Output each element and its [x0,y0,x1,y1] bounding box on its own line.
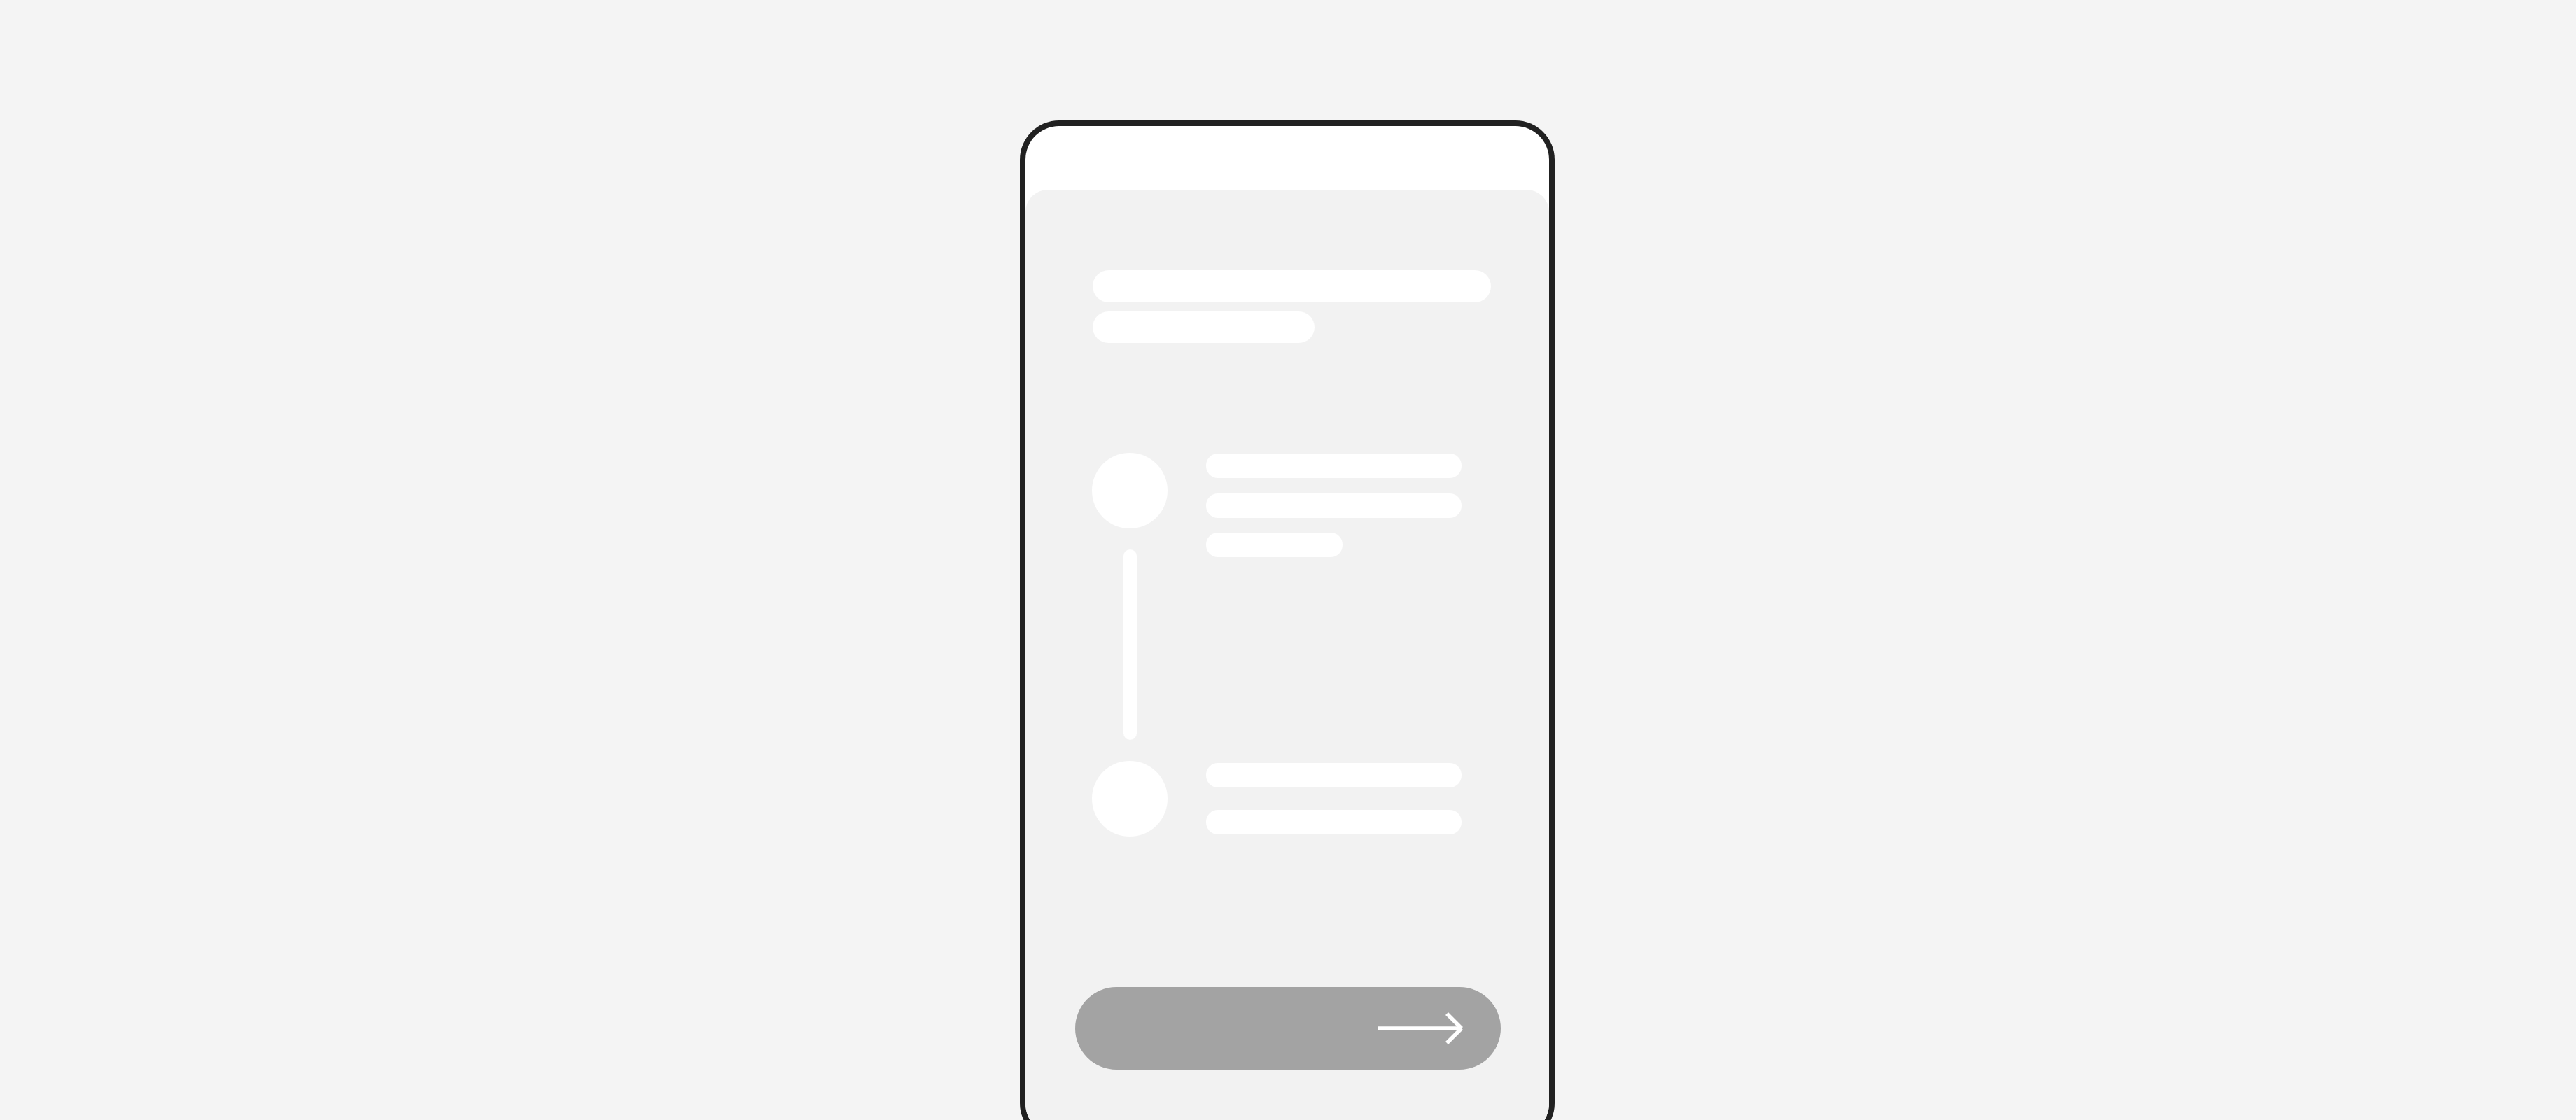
button[interactable]: Avatar [1092,761,1168,836]
button[interactable]: Avatar [1092,453,1168,528]
button[interactable]: Continue [1075,987,1501,1070]
